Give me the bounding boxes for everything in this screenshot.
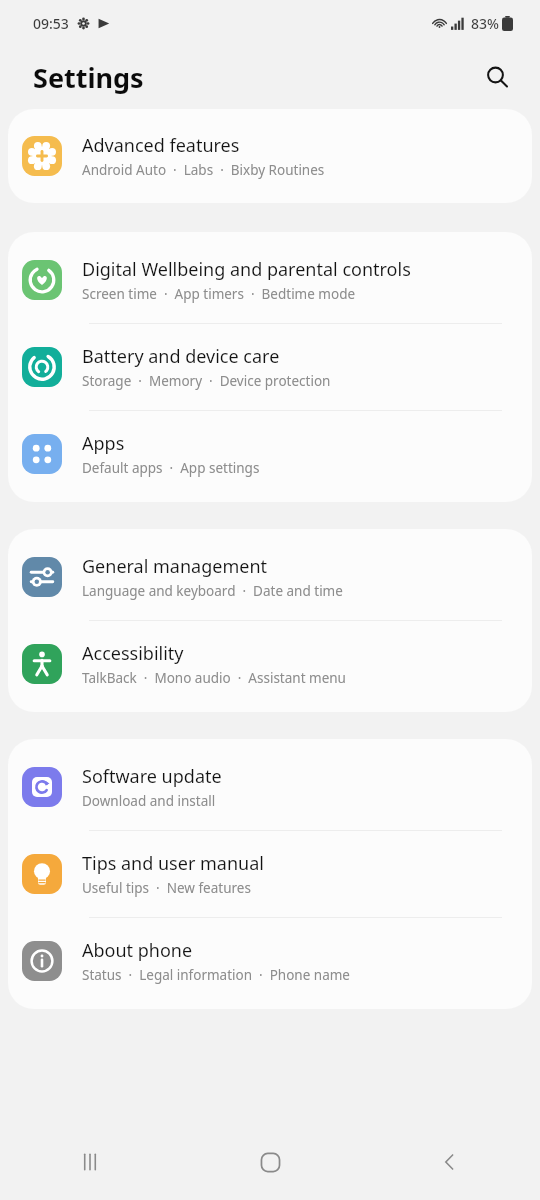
button[interactable]: General management <box>8 534 532 620</box>
button[interactable]: Tips and user manual <box>8 831 532 917</box>
button[interactable]: About phone <box>8 918 532 1004</box>
button[interactable]: Digital Wellbeing and parental controls <box>8 237 532 323</box>
staticText: Download and install <box>82 792 216 810</box>
button[interactable]: Software update <box>8 744 532 830</box>
staticText: Default apps · App settings <box>82 459 260 477</box>
button[interactable]: Advanced features <box>8 114 532 198</box>
button[interactable]: Home <box>180 1124 360 1200</box>
button[interactable]: Accessibility <box>8 621 532 707</box>
button[interactable]: Search <box>475 55 519 99</box>
staticText: Battery and device care <box>82 344 280 369</box>
staticText: Accessibility <box>82 641 184 666</box>
staticText: Digital Wellbeing and parental controls <box>82 257 411 282</box>
staticText: Language and keyboard · Date and time <box>82 582 343 600</box>
button[interactable]: Apps <box>8 411 532 497</box>
button[interactable]: Battery and device care <box>8 324 532 410</box>
staticText: 09:53 <box>33 14 69 33</box>
staticText: Useful tips · New features <box>82 879 251 897</box>
button[interactable]: Recent apps <box>0 1124 180 1200</box>
staticText: About phone <box>82 938 193 963</box>
staticText: Tips and user manual <box>82 851 264 876</box>
staticText: General management <box>82 554 268 579</box>
staticText: Status · Legal information · Phone name <box>82 966 350 984</box>
staticText: Settings <box>33 59 144 96</box>
staticText: Advanced features <box>82 133 240 158</box>
staticText: Software update <box>82 764 222 789</box>
staticText: Apps <box>82 431 125 456</box>
staticText: Storage · Memory · Device protection <box>82 372 331 390</box>
staticText: 83% <box>471 14 499 33</box>
staticText: Screen time · App timers · Bedtime mode <box>82 285 356 303</box>
staticText: Android Auto · Labs · Bixby Routines <box>82 161 325 179</box>
button[interactable]: Back <box>360 1124 540 1200</box>
staticText: TalkBack · Mono audio · Assistant menu <box>82 669 346 687</box>
